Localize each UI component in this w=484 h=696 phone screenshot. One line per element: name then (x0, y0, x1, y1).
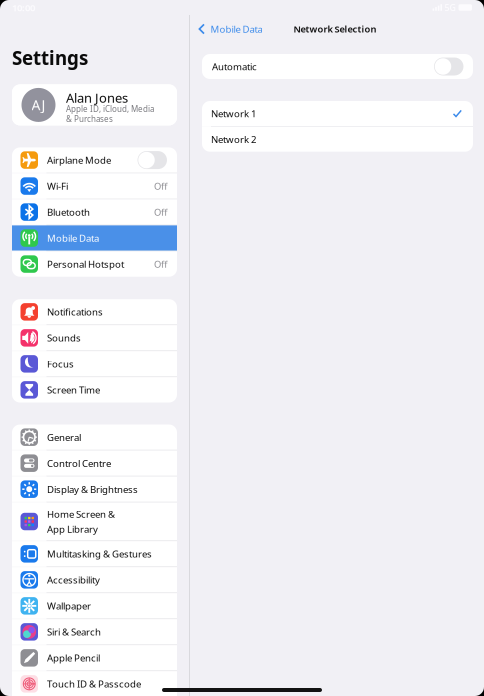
staticText: Off (154, 206, 167, 218)
button[interactable]: Screen Time (12, 377, 177, 402)
staticText: Airplane Mode (47, 153, 111, 167)
staticText: Mobile Data (210, 22, 262, 36)
staticText: Bluetooth (47, 205, 90, 219)
staticText: App Library (47, 522, 98, 536)
button[interactable]: Mobile Data (12, 225, 177, 251)
button[interactable]: Home Screen & (12, 502, 177, 540)
button[interactable]: Multitasking & Gestures (12, 541, 177, 566)
staticText: Network Selection (293, 23, 376, 35)
button[interactable]: Bluetooth (12, 199, 177, 225)
staticText: Network 1 (211, 107, 256, 120)
button[interactable]: Mobile Data (198, 17, 262, 41)
staticText: Sounds (47, 331, 81, 344)
button[interactable]: AJ (12, 84, 177, 125)
button[interactable]: Wallpaper (12, 593, 177, 618)
button[interactable]: General (12, 424, 177, 450)
button[interactable]: Personal Hotspot (12, 251, 177, 277)
button[interactable]: Wi-Fi (12, 173, 177, 199)
staticText: Network 2 (211, 133, 256, 146)
staticText: Off (154, 258, 167, 270)
staticText: Siri & Search (47, 625, 101, 638)
button[interactable]: Airplane Mode (12, 147, 177, 173)
staticText: Apple ID, iCloud, Media (66, 103, 154, 114)
staticText: 10:00 (12, 1, 35, 14)
button[interactable]: Notifications (12, 299, 177, 324)
staticText: Mobile Data (47, 231, 99, 245)
button[interactable]: Apple Pencil (12, 645, 177, 670)
button[interactable]: Focus (12, 351, 177, 376)
staticText: Focus (47, 357, 74, 370)
button[interactable]: Display & Brightness (12, 476, 177, 502)
button[interactable]: Network 1 (202, 101, 473, 126)
staticText: Wi-Fi (47, 179, 68, 193)
staticText: AJ (31, 95, 45, 114)
staticText: Alan Jones (66, 89, 128, 106)
staticText: Control Centre (47, 457, 111, 470)
staticText: & Purchases (66, 113, 113, 124)
staticText: Settings (12, 45, 88, 70)
staticText: Multitasking & Gestures (47, 547, 152, 560)
button[interactable]: Network 2 (202, 127, 473, 152)
staticText: Notifications (47, 305, 103, 318)
button[interactable]: Accessibility (12, 567, 177, 592)
staticText: Accessibility (47, 573, 100, 586)
staticText: Touch ID & Passcode (47, 677, 141, 690)
staticText: Off (154, 180, 167, 192)
button[interactable]: Sounds (12, 325, 177, 350)
staticText: 5G (444, 1, 455, 13)
staticText: Apple Pencil (47, 651, 100, 664)
staticText: Home Screen & (47, 507, 115, 520)
staticText: Personal Hotspot (47, 257, 124, 271)
staticText: General (47, 431, 81, 444)
staticText: Display & Brightness (47, 483, 138, 496)
staticText: Automatic (212, 60, 257, 73)
button[interactable]: Control Centre (12, 450, 177, 476)
staticText: Wallpaper (47, 599, 91, 612)
button[interactable]: Automatic (202, 54, 473, 79)
button[interactable]: Siri & Search (12, 619, 177, 644)
button[interactable]: Touch ID & Passcode (12, 671, 177, 696)
staticText: Screen Time (47, 383, 100, 396)
